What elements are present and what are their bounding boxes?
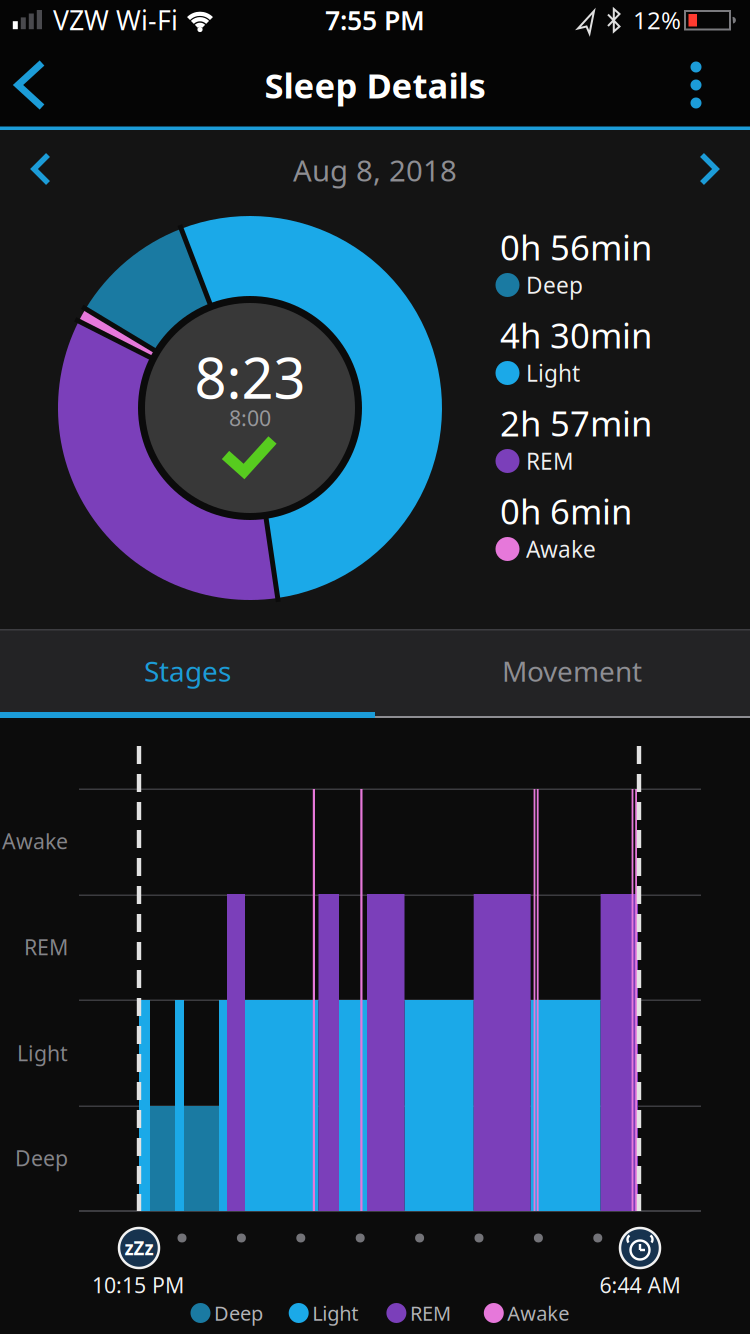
staticText: Sleep Details bbox=[264, 62, 485, 108]
staticText: REM bbox=[526, 446, 574, 476]
staticText: 0h 6min bbox=[500, 488, 632, 534]
button[interactable]: Stages bbox=[0, 630, 375, 712]
staticText: 2h 57min bbox=[500, 400, 652, 446]
staticText: 4h 30min bbox=[500, 312, 652, 358]
staticText: Deep bbox=[214, 1300, 263, 1326]
button[interactable]: More options bbox=[674, 58, 718, 112]
staticText: 6:44 AM bbox=[599, 1271, 680, 1299]
staticText: VZW Wi-Fi bbox=[53, 2, 178, 38]
staticText: Deep bbox=[15, 1144, 68, 1172]
staticText: Light bbox=[17, 1039, 68, 1067]
button[interactable]: Movement bbox=[375, 630, 750, 712]
staticText: Awake bbox=[507, 1300, 569, 1326]
staticText: Aug 8, 2018 bbox=[293, 150, 457, 189]
staticText: 0h 56min bbox=[500, 224, 652, 270]
staticText: REM bbox=[24, 933, 68, 961]
staticText: Deep bbox=[526, 270, 583, 300]
staticText: Movement bbox=[502, 652, 642, 690]
staticText: 10:15 PM bbox=[92, 1271, 184, 1299]
staticText: Awake bbox=[526, 534, 596, 564]
staticText: zZz bbox=[124, 1236, 153, 1260]
staticText: Awake bbox=[2, 827, 68, 855]
staticText: 8:00 bbox=[229, 404, 271, 432]
staticText: 7:55 PM bbox=[325, 2, 425, 38]
staticText: 8:23 bbox=[194, 340, 305, 414]
staticText: Stages bbox=[144, 652, 231, 690]
button[interactable]: Back bbox=[6, 59, 54, 111]
button[interactable]: Previous day bbox=[22, 151, 62, 187]
staticText: Light bbox=[312, 1300, 358, 1326]
button[interactable]: Next day bbox=[688, 151, 728, 187]
staticText: REM bbox=[410, 1300, 451, 1326]
staticText: 12% bbox=[633, 4, 681, 36]
staticText: Light bbox=[526, 358, 580, 388]
